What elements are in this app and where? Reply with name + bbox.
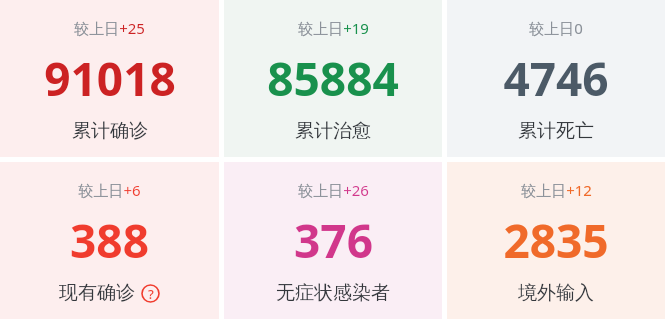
button[interactable]: 较上日+25 <box>0 0 219 157</box>
staticText: 85884 <box>267 47 399 110</box>
staticText: 较上日+12 <box>521 180 592 200</box>
staticText: 境外输入 <box>518 281 594 305</box>
button[interactable]: 较上日+19 <box>224 0 442 157</box>
button[interactable]: Help <box>141 284 160 303</box>
button[interactable]: 较上日+6 <box>0 162 219 319</box>
staticText: 388 <box>70 209 149 272</box>
staticText: 4746 <box>503 47 609 110</box>
staticText: 现有确诊 <box>59 281 135 305</box>
staticText: 376 <box>294 209 373 272</box>
staticText: 91018 <box>44 47 176 110</box>
staticText: ? <box>148 285 154 303</box>
staticText: 累计死亡 <box>518 119 594 143</box>
staticText: 累计确诊 <box>72 119 148 143</box>
staticText: 2835 <box>503 209 609 272</box>
staticText: 较上日+6 <box>78 180 141 200</box>
button[interactable]: 较上日0 <box>447 0 665 157</box>
staticText: 较上日+19 <box>298 18 369 38</box>
button[interactable]: 较上日+12 <box>447 162 665 319</box>
staticText: 累计治愈 <box>295 119 371 143</box>
staticText: 无症状感染者 <box>276 281 390 305</box>
staticText: 较上日0 <box>529 18 583 38</box>
staticText: 较上日+26 <box>298 180 369 200</box>
button[interactable]: 较上日+26 <box>224 162 442 319</box>
staticText: 较上日+25 <box>74 18 145 38</box>
